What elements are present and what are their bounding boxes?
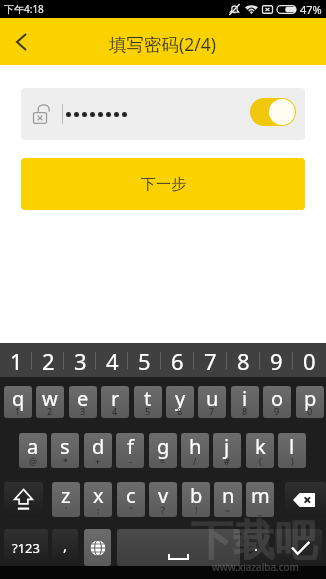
button[interactable]: Enter (275, 529, 322, 566)
button[interactable]: 8 (227, 343, 260, 377)
button[interactable]: Change language (84, 529, 111, 566)
button[interactable]: k (246, 433, 274, 468)
staticText: 下载吧 (191, 515, 317, 568)
staticText: n (222, 482, 235, 509)
staticText: 47% (300, 2, 322, 17)
staticText: a (27, 433, 39, 460)
staticText: 1 (15, 405, 21, 417)
staticText: / (193, 455, 197, 467)
button[interactable]: g (149, 433, 177, 468)
button[interactable]: z (52, 482, 80, 517)
button[interactable]: v (149, 482, 177, 517)
staticText: u (206, 386, 219, 412)
staticText: ? (161, 504, 165, 516)
staticText: t (144, 386, 152, 412)
staticText: l (289, 433, 295, 460)
button[interactable]: e (69, 386, 97, 418)
button[interactable] (21, 88, 305, 140)
staticText: 8 (237, 346, 250, 376)
button[interactable]: r (101, 386, 129, 418)
staticText: 3 (74, 346, 87, 376)
button[interactable]: 7 (194, 343, 227, 377)
button[interactable]: j (213, 433, 241, 468)
staticText: x (93, 482, 104, 509)
button[interactable]: p (296, 386, 324, 418)
staticText: , (63, 535, 68, 555)
staticText: j (224, 433, 230, 460)
button[interactable]: m (246, 482, 274, 517)
staticText: 2 (47, 405, 53, 417)
staticText: f (127, 433, 134, 460)
staticText: 6 (171, 346, 184, 376)
staticText: e (77, 386, 89, 412)
button[interactable]: Backspace (285, 482, 326, 517)
staticText: ) (291, 455, 294, 467)
staticText: k (255, 433, 266, 460)
button[interactable]: n (214, 482, 242, 517)
button[interactable]: Shift (4, 482, 43, 517)
staticText: * (63, 455, 68, 467)
staticText: y (175, 386, 186, 412)
staticText: 7 (209, 405, 215, 417)
staticText: www.xiazaiba.com (212, 560, 299, 574)
button[interactable]: o (263, 386, 291, 418)
button[interactable]: 0 (293, 343, 326, 377)
button[interactable]: q (4, 386, 32, 418)
button[interactable]: 9 (260, 343, 293, 377)
staticText: 1 (10, 346, 23, 376)
button[interactable]: l (278, 433, 306, 468)
button[interactable]: Back (0, 18, 42, 65)
staticText: 9 (270, 346, 283, 376)
staticText: 0 (307, 405, 313, 417)
staticText: " (129, 504, 133, 516)
button[interactable]: c (117, 482, 145, 517)
staticText: r (111, 386, 120, 412)
button[interactable]: 6 (161, 343, 194, 377)
button[interactable]: u (198, 386, 226, 418)
button[interactable]: 下一步 (21, 158, 305, 210)
button[interactable]: Space (117, 529, 240, 566)
button[interactable]: ?123 (4, 529, 48, 566)
staticText: 0 (303, 346, 316, 376)
button[interactable]: 4 (96, 343, 128, 377)
staticText: 5 (138, 346, 151, 376)
staticText: ?123 (12, 539, 40, 557)
staticText: 6 (177, 405, 183, 417)
button[interactable]: w (36, 386, 64, 418)
button[interactable]: h (181, 433, 209, 468)
staticText: : (97, 504, 100, 516)
staticText: 9 (274, 405, 280, 417)
button[interactable]: . (244, 529, 269, 566)
button[interactable]: y (166, 386, 194, 418)
button[interactable]: i (231, 386, 259, 418)
staticText: 3 (80, 405, 86, 417)
staticText: 4 (112, 405, 118, 417)
staticText: w (42, 386, 58, 412)
staticText: @ (29, 455, 38, 467)
staticText: ! (195, 504, 198, 516)
button[interactable]: d (84, 433, 112, 468)
button[interactable]: 2 (32, 343, 64, 377)
staticText: 填写密码(2/4) (109, 32, 217, 56)
staticText: 8 (242, 405, 248, 417)
button[interactable]: s (51, 433, 79, 468)
button[interactable]: f (116, 433, 144, 468)
button[interactable]: , (52, 529, 78, 566)
button[interactable]: a (19, 433, 47, 468)
staticText: # (224, 455, 230, 467)
button[interactable]: 1 (0, 343, 32, 377)
button[interactable]: 3 (64, 343, 96, 377)
button[interactable]: Toggle password visibility (250, 98, 296, 126)
staticText: i (242, 386, 248, 412)
staticText: c (126, 482, 136, 509)
button[interactable]: x (84, 482, 112, 517)
staticText: - (129, 455, 132, 467)
staticText: 5 (145, 405, 151, 417)
button[interactable]: t (134, 386, 162, 418)
staticText: 4 (106, 346, 119, 376)
staticText: s (60, 433, 70, 460)
button[interactable]: b (182, 482, 210, 517)
staticText: + (95, 455, 101, 467)
staticText: 下午4:18 (4, 2, 44, 16)
button[interactable]: 5 (128, 343, 161, 377)
